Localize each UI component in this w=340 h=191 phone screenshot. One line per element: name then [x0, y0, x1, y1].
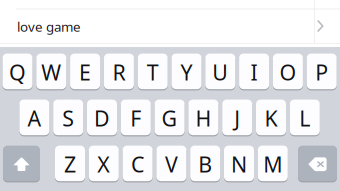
- staticText: O: [279, 58, 296, 86]
- button[interactable]: Z: [55, 144, 85, 183]
- button[interactable]: love game: [0, 0, 340, 47]
- button[interactable]: D: [87, 98, 117, 137]
- button[interactable]: N: [224, 144, 254, 183]
- button[interactable]: P: [307, 52, 337, 91]
- button[interactable]: X: [89, 144, 119, 183]
- staticText: N: [231, 150, 247, 178]
- button[interactable]: T: [138, 52, 168, 91]
- staticText: A: [27, 104, 41, 132]
- button[interactable]: J: [222, 98, 252, 137]
- staticText: C: [131, 150, 144, 178]
- staticText: V: [165, 150, 178, 178]
- staticText: T: [147, 58, 159, 86]
- staticText: P: [315, 58, 328, 86]
- button[interactable]: M: [258, 144, 288, 183]
- staticText: W: [41, 58, 61, 86]
- button[interactable]: Y: [171, 52, 201, 91]
- staticText: I: [251, 58, 258, 86]
- staticText: E: [79, 58, 91, 86]
- staticText: F: [130, 104, 141, 132]
- staticText: L: [299, 104, 310, 132]
- staticText: Y: [180, 58, 192, 86]
- button[interactable]: K: [256, 98, 286, 137]
- button[interactable]: C: [123, 144, 153, 183]
- staticText: H: [195, 104, 211, 132]
- staticText: K: [264, 104, 277, 132]
- button[interactable]: U: [205, 52, 235, 91]
- staticText: M: [263, 150, 282, 178]
- button[interactable]: O: [273, 52, 303, 91]
- staticText: J: [234, 104, 240, 132]
- staticText: G: [162, 104, 178, 132]
- staticText: B: [198, 150, 212, 178]
- button[interactable]: S: [53, 98, 83, 137]
- button[interactable]: G: [155, 98, 185, 137]
- button[interactable]: R: [104, 52, 134, 91]
- staticText: X: [97, 150, 110, 178]
- button[interactable]: V: [156, 144, 186, 183]
- staticText: Q: [9, 58, 26, 86]
- staticText: love game: [17, 18, 81, 35]
- button[interactable]: Shift: [3, 144, 40, 183]
- button[interactable]: B: [190, 144, 220, 183]
- button[interactable]: F: [121, 98, 151, 137]
- staticText: U: [212, 58, 228, 86]
- staticText: Z: [64, 150, 76, 178]
- button[interactable]: W: [36, 52, 66, 91]
- staticText: S: [62, 104, 74, 132]
- button[interactable]: Q: [2, 52, 32, 91]
- button[interactable]: L: [290, 98, 320, 137]
- button[interactable]: A: [19, 98, 49, 137]
- button[interactable]: E: [70, 52, 100, 91]
- button[interactable]: H: [188, 98, 218, 137]
- button[interactable]: Delete: [298, 144, 337, 183]
- button[interactable]: I: [239, 52, 269, 91]
- staticText: D: [94, 104, 110, 132]
- staticText: R: [112, 58, 125, 86]
